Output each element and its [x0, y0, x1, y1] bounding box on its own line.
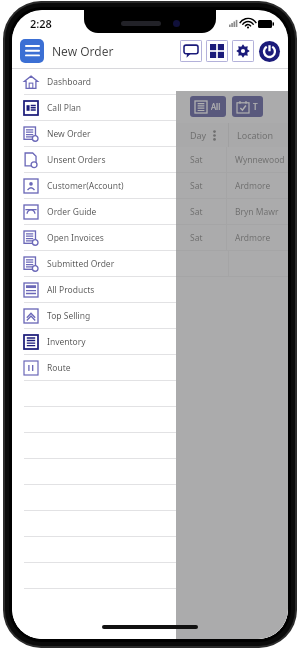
- staticText: T: [253, 101, 258, 112]
- button[interactable]: Chat: [180, 40, 202, 62]
- staticText: Inventory: [47, 336, 86, 348]
- button[interactable]: Power / Log out: [258, 40, 280, 62]
- staticText: All Products: [47, 284, 95, 296]
- staticText: Top Selling: [47, 310, 91, 322]
- staticText: Open Invoices: [47, 232, 104, 244]
- button[interactable]: Apps: [206, 40, 228, 62]
- staticText: Sat: [190, 206, 203, 218]
- staticText: Sat: [190, 154, 203, 166]
- button[interactable]: Order Guide: [12, 199, 288, 224]
- button[interactable]: Customer(Account): [12, 173, 288, 198]
- button[interactable]: Unsent Orders: [12, 147, 288, 172]
- button[interactable]: Route: [12, 355, 288, 380]
- staticText: New Order: [52, 43, 114, 59]
- button[interactable]: Settings: [232, 40, 254, 62]
- button[interactable]: Call Plan: [12, 95, 288, 120]
- button[interactable]: All Products: [12, 277, 288, 302]
- staticText: Route: [47, 362, 71, 374]
- staticText: Sat: [190, 232, 203, 244]
- button[interactable]: Top Selling: [12, 303, 288, 328]
- staticText: Submitted Order: [47, 258, 115, 270]
- staticText: Sat: [190, 180, 203, 192]
- staticText: Ardmore: [235, 180, 271, 192]
- staticText: Order Guide: [47, 206, 97, 218]
- staticText: Bryn Mawr: [235, 206, 279, 218]
- staticText: Ardmore: [235, 232, 271, 244]
- button[interactable]: All: [190, 96, 226, 117]
- button[interactable]: Inventory: [12, 329, 288, 354]
- staticText: Customer(Account): [47, 180, 124, 192]
- staticText: New Order: [47, 128, 91, 140]
- staticText: Day: [190, 129, 207, 141]
- button[interactable]: Submitted Order: [12, 251, 288, 276]
- staticText: 2:28: [30, 16, 52, 31]
- button[interactable]: Open navigation menu: [20, 39, 44, 63]
- staticText: Location: [237, 129, 274, 141]
- button[interactable]: Open Invoices: [12, 225, 288, 250]
- staticText: Wynnewood: [235, 154, 285, 166]
- button[interactable]: Dashboard: [12, 69, 288, 94]
- button[interactable]: New Order: [12, 121, 288, 146]
- staticText: Unsent Orders: [47, 154, 106, 166]
- staticText: All: [211, 101, 221, 112]
- button[interactable]: T: [232, 96, 263, 117]
- staticText: Call Plan: [47, 102, 82, 114]
- staticText: Dashboard: [47, 76, 92, 88]
